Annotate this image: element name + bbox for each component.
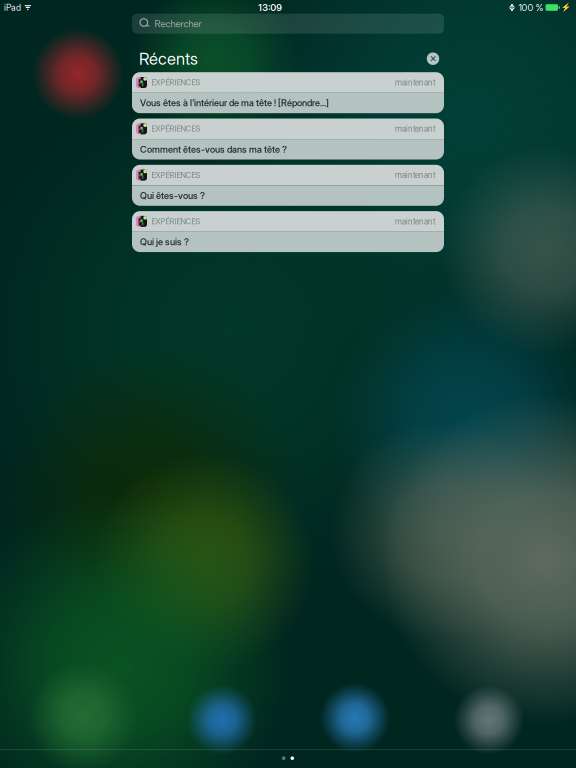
staticText: maintenant bbox=[395, 124, 436, 134]
staticText: EXPÉRIENCES bbox=[151, 124, 200, 133]
staticText: EXPÉRIENCES bbox=[151, 78, 200, 87]
staticText: maintenant bbox=[395, 170, 436, 180]
staticText: EXPÉRIENCES bbox=[151, 217, 200, 226]
staticText: maintenant bbox=[395, 77, 436, 87]
staticText: Rechercher bbox=[154, 18, 201, 29]
staticText: Récents bbox=[139, 49, 198, 69]
button[interactable]: Effacer les récents bbox=[422, 48, 444, 70]
staticText: Comment êtes-vous dans ma tête ? bbox=[140, 144, 287, 155]
staticText: Qui êtes-vous ? bbox=[140, 190, 205, 201]
staticText: EXPÉRIENCES bbox=[151, 170, 200, 180]
staticText: 13:09 bbox=[258, 2, 282, 13]
button[interactable]: EXPÉRIENCES bbox=[132, 118, 444, 159]
button[interactable]: EXPÉRIENCES bbox=[132, 72, 444, 113]
staticText: ⚡ bbox=[561, 3, 571, 12]
staticText: ✕ bbox=[429, 54, 436, 64]
staticText: Vous êtes à l'intérieur de ma tête ! [Ré… bbox=[140, 97, 329, 108]
button[interactable]: Rechercher bbox=[132, 14, 444, 34]
button[interactable]: EXPÉRIENCES bbox=[132, 165, 444, 206]
staticText: maintenant bbox=[395, 216, 436, 226]
button[interactable]: EXPÉRIENCES bbox=[132, 211, 444, 252]
staticText: 100 % bbox=[518, 2, 543, 13]
staticText: iPad bbox=[4, 2, 21, 13]
staticText: Qui je suis ? bbox=[140, 236, 189, 247]
